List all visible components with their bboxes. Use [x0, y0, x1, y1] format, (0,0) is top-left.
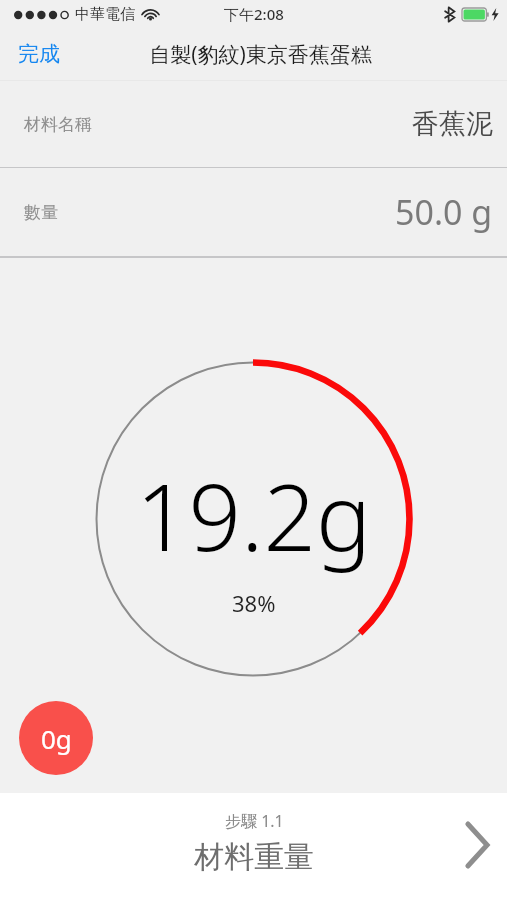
button[interactable]: 數量: [0, 168, 507, 256]
staticText: 步驟 1.1: [225, 810, 284, 832]
staticText: 中華電信: [75, 5, 135, 24]
button[interactable]: Next step: [447, 810, 507, 880]
staticText: 0g: [41, 721, 72, 756]
staticText: 完成: [18, 41, 60, 67]
button[interactable]: 步驟 1.1: [0, 793, 507, 900]
staticText: 19.2g: [136, 453, 372, 578]
button[interactable]: 0g: [19, 701, 93, 775]
staticText: 香蕉泥: [412, 107, 493, 141]
staticText: 材料重量: [194, 838, 314, 876]
staticText: 材料名稱: [24, 114, 92, 135]
staticText: 數量: [24, 202, 58, 223]
staticText: 自製(豹紋)東京香蕉蛋糕: [149, 40, 372, 69]
staticText: 下午2:08: [224, 4, 284, 24]
button[interactable]: 完成: [0, 33, 78, 75]
button[interactable]: 材料名稱: [0, 81, 507, 167]
staticText: 50.0 g: [395, 189, 493, 235]
staticText: 38%: [232, 588, 276, 618]
